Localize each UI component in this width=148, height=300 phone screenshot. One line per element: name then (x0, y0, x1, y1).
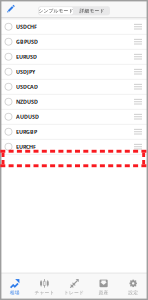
button[interactable]: GBPUSD (0, 34, 148, 49)
staticText: チャート (34, 290, 54, 296)
button[interactable]: USDJPY (0, 64, 148, 79)
button[interactable]: USDCAD (0, 79, 148, 94)
staticText: 資産 (99, 290, 109, 296)
button[interactable]: EURCHF (0, 139, 148, 154)
button[interactable]: 相場 (0, 273, 30, 300)
staticText: EURCHF (16, 143, 36, 150)
staticText: 設定 (128, 290, 138, 296)
button[interactable]: NZDUSD (0, 94, 148, 109)
staticText: 詳細モード (79, 8, 104, 14)
button[interactable]: 編集 (0, 0, 22, 17)
button[interactable]: チャート (30, 273, 59, 300)
button[interactable]: 設定 (118, 273, 148, 300)
staticText: USDJPY (16, 68, 35, 75)
staticText: 相場 (10, 290, 20, 296)
staticText: EURUSD (16, 53, 37, 60)
staticText: GBPUSD (16, 38, 38, 45)
button[interactable]: AUDUSD (0, 109, 148, 124)
button[interactable]: トレード (59, 273, 89, 300)
button[interactable]: USDCHF (0, 19, 148, 34)
staticText: トレード (64, 290, 84, 296)
staticText: NZDUSD (16, 98, 38, 105)
button[interactable]: シンプルモード (38, 6, 74, 15)
button[interactable]: EURGBP (0, 124, 148, 139)
button[interactable]: EURUSD (0, 49, 148, 64)
staticText: シンプルモード (38, 8, 73, 14)
staticText: USDCHF (16, 23, 37, 30)
staticText: AUDUSD (16, 113, 39, 120)
staticText: EURGBP (16, 128, 37, 135)
button[interactable]: 資産 (89, 273, 118, 300)
button[interactable]: 詳細モード (74, 6, 110, 15)
staticText: USDCAD (16, 83, 38, 90)
